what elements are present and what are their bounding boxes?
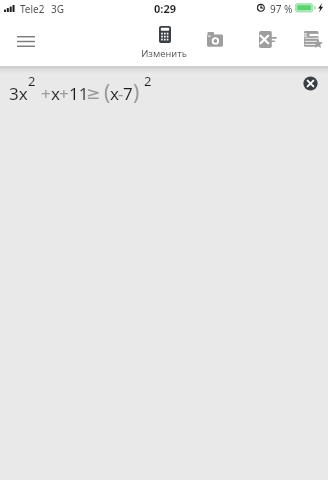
staticText: 11: [69, 82, 89, 105]
button[interactable]: Menu: [6, 26, 46, 56]
staticText: 7: [123, 82, 133, 105]
staticText: x: [110, 82, 119, 105]
staticText: Изменить: [138, 47, 190, 60]
staticText: 2: [144, 72, 152, 90]
staticText: Tele2: [20, 2, 45, 16]
button[interactable]: Saved: [298, 24, 328, 54]
staticText: 3G: [51, 2, 64, 16]
staticText: +: [41, 82, 51, 105]
button[interactable]: Camera: [198, 24, 232, 54]
staticText: ): [133, 78, 140, 107]
staticText: 2: [28, 72, 36, 90]
staticText: 97 %: [270, 2, 293, 16]
button[interactable]: Изменить: [139, 22, 191, 62]
staticText: -: [118, 82, 124, 105]
button[interactable]: Solve: [252, 24, 286, 54]
staticText: x: [51, 82, 60, 105]
staticText: (: [104, 78, 111, 107]
button[interactable]: Formula input: [0, 66, 328, 480]
staticText: 0:29: [154, 1, 176, 16]
button[interactable]: Clear: [296, 69, 324, 97]
staticText: +: [59, 82, 69, 105]
staticText: ≥: [86, 83, 101, 103]
staticText: 3x: [9, 82, 28, 105]
